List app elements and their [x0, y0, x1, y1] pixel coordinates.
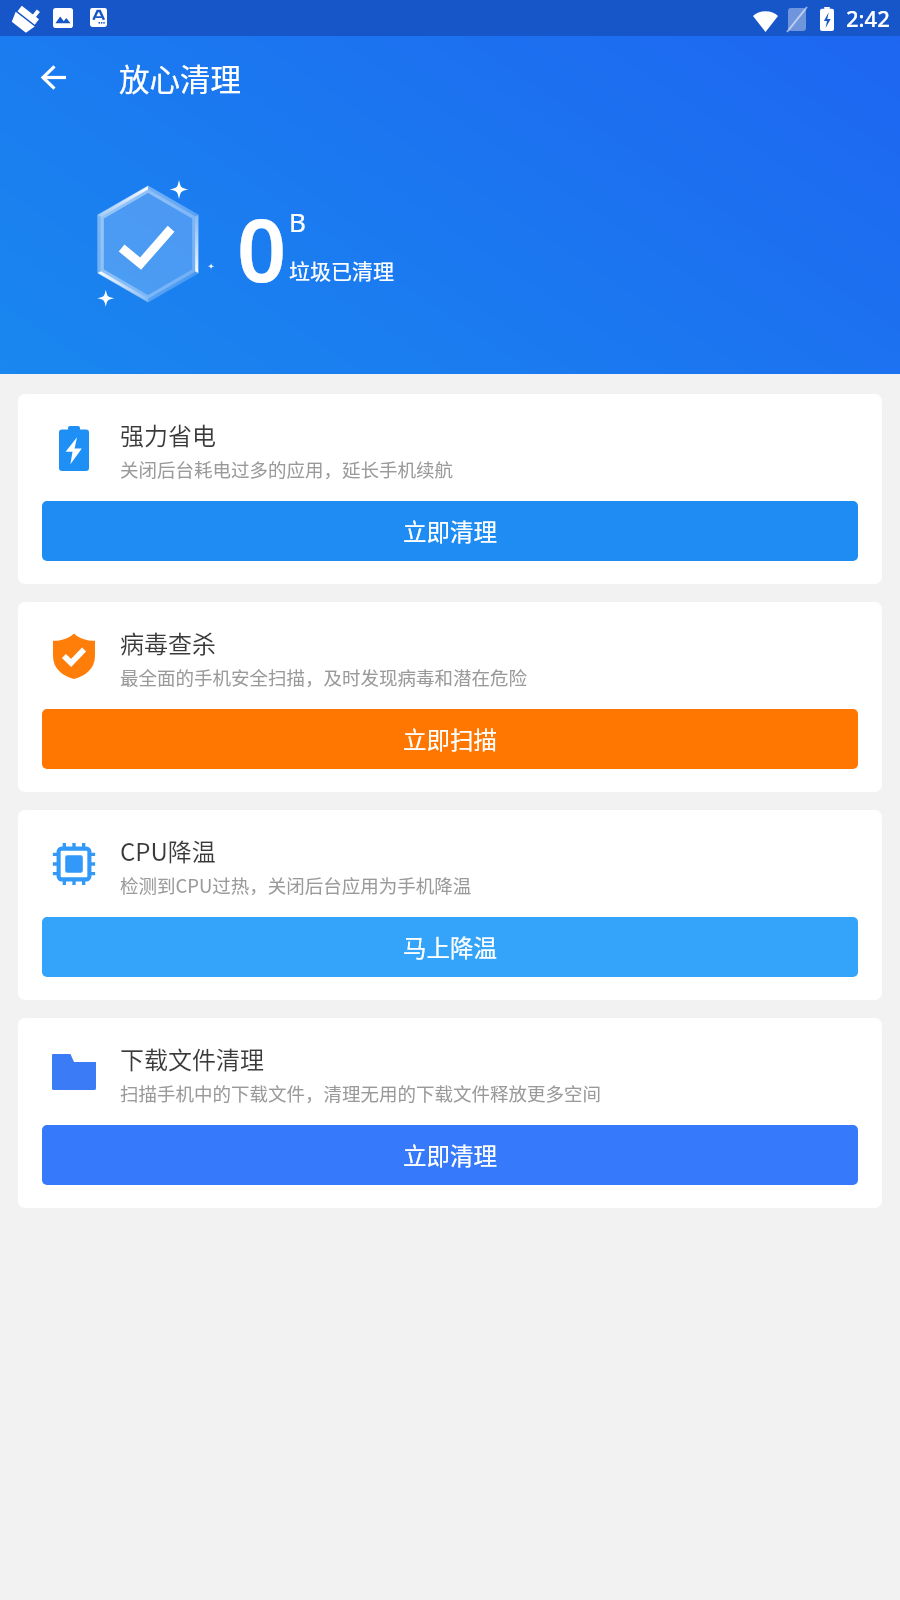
staticText: 2:42	[846, 3, 890, 33]
button[interactable]: Back	[18, 42, 90, 112]
staticText: 扫描手机中的下载文件，清理无用的下载文件释放更多空间	[120, 1080, 602, 1107]
button[interactable]: 马上降温	[42, 917, 858, 977]
staticText: 立即清理	[403, 514, 497, 548]
staticText: CPU降温	[120, 833, 216, 868]
staticText: 强力省电	[120, 417, 216, 452]
staticText: 0	[237, 190, 287, 307]
button[interactable]: 立即扫描	[42, 709, 858, 769]
staticText: 下载文件清理	[120, 1041, 264, 1076]
button[interactable]: CPU降温	[18, 810, 882, 1000]
button[interactable]: 病毒查杀	[18, 602, 882, 792]
staticText: 病毒查杀	[120, 625, 216, 660]
staticText: 立即扫描	[403, 722, 497, 756]
button[interactable]: 立即清理	[42, 501, 858, 561]
staticText: 马上降温	[403, 930, 497, 964]
staticText: 垃圾已清理	[289, 255, 394, 285]
staticText: 最全面的手机安全扫描，及时发现病毒和潜在危险	[120, 664, 528, 691]
button[interactable]: 强力省电	[18, 394, 882, 584]
staticText: 检测到CPU过热，关闭后台应用为手机降温	[120, 872, 472, 899]
staticText: 立即清理	[403, 1138, 497, 1172]
staticText: 关闭后台耗电过多的应用，延长手机续航	[120, 456, 454, 483]
button[interactable]: 下载文件清理	[18, 1018, 882, 1208]
staticText: B	[289, 204, 306, 239]
staticText: 放心清理	[119, 56, 241, 100]
button[interactable]: 立即清理	[42, 1125, 858, 1185]
